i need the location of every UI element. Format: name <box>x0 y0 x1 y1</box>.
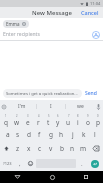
staticText: q <box>4 118 8 127</box>
button[interactable]: b <box>56 141 67 156</box>
staticText: we <box>77 103 84 110</box>
staticText: k <box>82 130 86 139</box>
staticText: f <box>38 130 41 139</box>
staticText: Send <box>85 90 97 97</box>
staticText: u <box>66 118 71 127</box>
button[interactable]: f <box>34 127 45 141</box>
staticText: 9 <box>87 114 89 118</box>
button[interactable]: Add contact <box>91 30 100 39</box>
other: Remove Emma <box>22 22 26 26</box>
button[interactable]: n <box>67 141 78 156</box>
staticText: 11:04 <box>90 1 101 6</box>
button[interactable]: Emma <box>3 20 29 28</box>
staticText: w <box>14 118 20 127</box>
button[interactable]: 0 <box>93 113 103 127</box>
button[interactable]: Enter <box>87 156 103 171</box>
button[interactable]: s <box>13 127 23 141</box>
staticText: r <box>37 118 40 127</box>
staticText: , <box>19 160 21 168</box>
button[interactable]: 2 <box>11 113 22 127</box>
staticText: t <box>47 118 50 127</box>
button[interactable]: we <box>66 100 94 113</box>
button[interactable]: g <box>45 127 56 141</box>
button[interactable]: v <box>45 141 56 156</box>
button[interactable]: 4 <box>33 113 43 127</box>
button[interactable]: Google <box>0 100 8 113</box>
staticText: l <box>94 130 96 139</box>
staticText: p <box>96 118 100 127</box>
staticText: 8 <box>77 114 79 118</box>
button[interactable]: Sometimes i get a quick realization... <box>3 89 82 98</box>
staticText: a <box>6 130 10 139</box>
staticText: n <box>70 144 75 153</box>
staticText: Sometimes i get a quick realization... <box>6 91 78 97</box>
staticText: e <box>26 118 30 127</box>
staticText: s <box>16 130 20 139</box>
staticText: d <box>27 130 31 139</box>
button[interactable]: Enter recipients <box>0 29 103 40</box>
button[interactable]: x <box>23 141 34 156</box>
button[interactable]: Voice input <box>94 100 103 113</box>
staticText: 6 <box>57 114 59 118</box>
button[interactable]: 7 <box>63 113 73 127</box>
button[interactable]: k <box>78 127 89 141</box>
button[interactable]: . <box>77 156 87 171</box>
staticText: . <box>81 160 83 168</box>
button[interactable]: d <box>23 127 34 141</box>
button[interactable]: I'm <box>8 100 36 113</box>
staticText: x <box>27 144 31 153</box>
staticText: v <box>49 144 53 153</box>
staticText: Cancel <box>81 9 99 16</box>
button[interactable]: 5 <box>43 113 53 127</box>
staticText: z <box>16 144 20 153</box>
button[interactable]: Backspace <box>89 141 103 156</box>
button[interactable]: h <box>56 127 67 141</box>
staticText: y <box>56 118 60 127</box>
staticText: 7 <box>68 114 70 118</box>
staticText: c <box>38 144 42 153</box>
staticText: New Message <box>32 9 72 17</box>
staticText: I <box>50 103 52 110</box>
staticText: 4 <box>38 114 40 118</box>
staticText: h <box>59 130 64 139</box>
staticText: g <box>49 130 53 139</box>
button[interactable]: Send <box>82 88 100 98</box>
button[interactable]: , <box>15 156 25 171</box>
button[interactable]: ?123 <box>0 156 15 171</box>
button[interactable]: z <box>13 141 23 156</box>
button[interactable]: Shift <box>0 141 13 156</box>
staticText: I'm <box>18 103 26 110</box>
staticText: Enter recipients <box>3 31 91 38</box>
staticText: m <box>80 144 87 153</box>
staticText: j <box>72 130 74 139</box>
button[interactable]: 9 <box>83 113 93 127</box>
button[interactable]: Back <box>0 171 35 183</box>
button[interactable]: l <box>89 127 100 141</box>
button[interactable]: a <box>3 127 13 141</box>
button[interactable]: 1 <box>0 113 11 127</box>
staticText: 1 <box>5 114 7 118</box>
button[interactable]: Recents <box>69 171 103 183</box>
staticText: 5 <box>48 114 50 118</box>
button[interactable]: m <box>78 141 89 156</box>
staticText: 2 <box>16 114 18 118</box>
button[interactable]: 3 <box>22 113 33 127</box>
button[interactable]: j <box>67 127 78 141</box>
staticText: b <box>60 144 64 153</box>
staticText: i <box>77 118 79 127</box>
button[interactable]: 6 <box>53 113 63 127</box>
button[interactable]: 8 <box>73 113 83 127</box>
button[interactable]: I <box>37 100 65 113</box>
staticText: o <box>86 118 90 127</box>
staticText: ?123 <box>3 161 12 166</box>
staticText: 3 <box>27 114 29 118</box>
staticText: 0 <box>97 114 99 118</box>
staticText: Emma <box>6 21 20 27</box>
button[interactable]: Cancel <box>77 7 103 18</box>
button[interactable]: Home <box>35 171 69 183</box>
button[interactable]: Emoji <box>25 156 35 171</box>
button[interactable]: c <box>34 141 45 156</box>
